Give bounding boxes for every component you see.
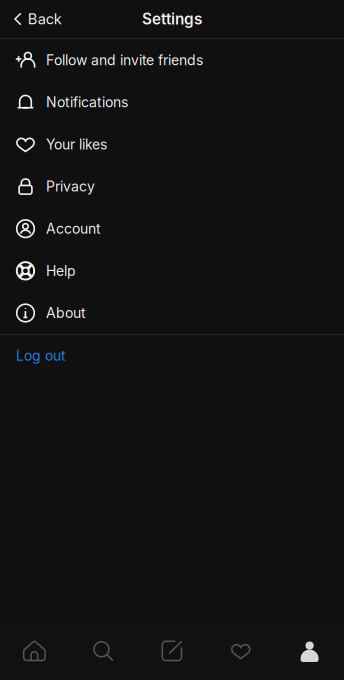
staticText: Account (46, 220, 101, 237)
staticText: Follow and invite friends (46, 52, 203, 68)
staticText: Privacy (46, 178, 95, 195)
button[interactable]: Your likes (0, 123, 344, 165)
staticText: Your likes (46, 136, 107, 153)
button[interactable]: About (0, 292, 344, 334)
staticText: About (46, 304, 86, 321)
button[interactable]: Notifications (0, 81, 344, 123)
button[interactable]: Home (0, 632, 69, 680)
button[interactable]: Help (0, 250, 344, 292)
staticText: Log out (16, 347, 66, 364)
button[interactable]: Back (0, 0, 74, 38)
staticText: Back (28, 10, 62, 28)
button[interactable]: Privacy (0, 165, 344, 207)
staticText: Notifications (46, 94, 128, 111)
staticText: Settings (142, 10, 202, 28)
button[interactable]: Create (138, 632, 206, 680)
button[interactable]: Search (69, 632, 138, 680)
staticText: Help (46, 262, 76, 279)
button[interactable]: Account (0, 208, 344, 250)
button[interactable]: Activity (206, 632, 275, 680)
button[interactable]: Profile (275, 632, 344, 680)
button[interactable]: Follow and invite friends (0, 39, 344, 81)
button[interactable]: Log out (0, 335, 344, 376)
